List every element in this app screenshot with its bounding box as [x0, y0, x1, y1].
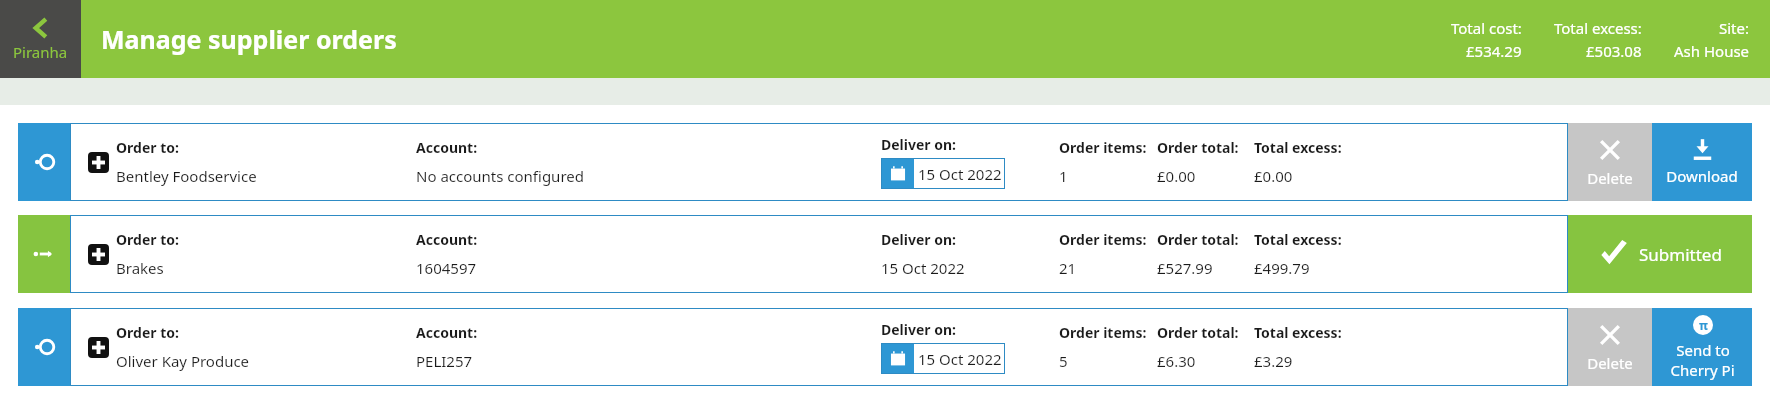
staticText: No accounts configured — [416, 166, 584, 186]
staticText: Total excess: — [1554, 18, 1642, 38]
staticText: Order to: — [116, 323, 179, 342]
staticText: Piranha — [13, 42, 68, 62]
staticText: Total excess: — [1254, 230, 1342, 249]
button[interactable]: Order status — [18, 215, 70, 293]
staticText: Delete — [1587, 168, 1633, 188]
staticText: £0.00 — [1157, 166, 1196, 186]
staticText: Manage supplier orders — [101, 22, 397, 56]
staticText: £0.00 — [1254, 166, 1293, 186]
staticText: 1 — [1059, 166, 1068, 186]
staticText: Cherry Pi — [1670, 360, 1735, 380]
button[interactable]: Delete — [1568, 123, 1652, 201]
button[interactable]: 15 Oct 2022 — [881, 343, 1005, 374]
staticText: £6.30 — [1157, 351, 1196, 371]
button[interactable]: Send to Cherry Pi — [1652, 308, 1752, 386]
button[interactable]: Download — [1652, 123, 1752, 201]
staticText: £527.99 — [1157, 258, 1213, 278]
button[interactable]: Delete — [1568, 308, 1652, 386]
staticText: PELI257 — [416, 351, 473, 371]
button[interactable]: Back to Piranha — [0, 0, 81, 78]
staticText: Account: — [416, 323, 478, 342]
button[interactable]: Order status — [18, 308, 70, 386]
staticText: Total excess: — [1254, 323, 1342, 342]
staticText: Bentley Foodservice — [116, 166, 257, 186]
staticText: Total cost: — [1451, 18, 1522, 38]
staticText: Ash House — [1674, 41, 1750, 61]
staticText: £3.29 — [1254, 351, 1293, 371]
staticText: Order total: — [1157, 230, 1239, 249]
staticText: Order total: — [1157, 138, 1239, 157]
staticText: £503.08 — [1586, 41, 1642, 61]
staticText: Order items: — [1059, 230, 1147, 249]
button[interactable]: Order status — [18, 123, 70, 201]
staticText: Order total: — [1157, 323, 1239, 342]
staticText: Deliver on: — [881, 320, 956, 339]
button[interactable]: 15 Oct 2022 — [881, 158, 1005, 189]
staticText: Order items: — [1059, 138, 1147, 157]
button[interactable]: Submitted — [1568, 215, 1752, 293]
staticText: 15 Oct 2022 — [918, 164, 1002, 184]
staticText: Total excess: — [1254, 138, 1342, 157]
button[interactable]: Add order line — [88, 337, 109, 358]
staticText: Delete — [1587, 353, 1633, 373]
staticText: 5 — [1059, 351, 1068, 371]
staticText: Submitted — [1639, 243, 1722, 266]
staticText: Order to: — [116, 138, 179, 157]
staticText: Oliver Kay Produce — [116, 351, 250, 371]
staticText: Order items: — [1059, 323, 1147, 342]
staticText: Site: — [1719, 18, 1750, 38]
staticText: π — [1699, 317, 1708, 333]
staticText: Download — [1666, 166, 1738, 186]
staticText: Deliver on: — [881, 135, 956, 154]
staticText: Brakes — [116, 258, 164, 278]
staticText: 15 Oct 2022 — [918, 349, 1002, 369]
staticText: £534.29 — [1466, 41, 1522, 61]
staticText: Order to: — [116, 230, 179, 249]
staticText: Deliver on: — [881, 230, 956, 249]
staticText: £499.79 — [1254, 258, 1310, 278]
staticText: Account: — [416, 138, 478, 157]
staticText: 21 — [1059, 258, 1077, 278]
staticText: 15 Oct 2022 — [881, 258, 965, 278]
button[interactable]: Add order line — [88, 152, 109, 173]
staticText: Account: — [416, 230, 478, 249]
button[interactable]: Add order line — [88, 244, 109, 265]
staticText: 1604597 — [416, 258, 477, 278]
staticText: Send to — [1676, 340, 1730, 360]
